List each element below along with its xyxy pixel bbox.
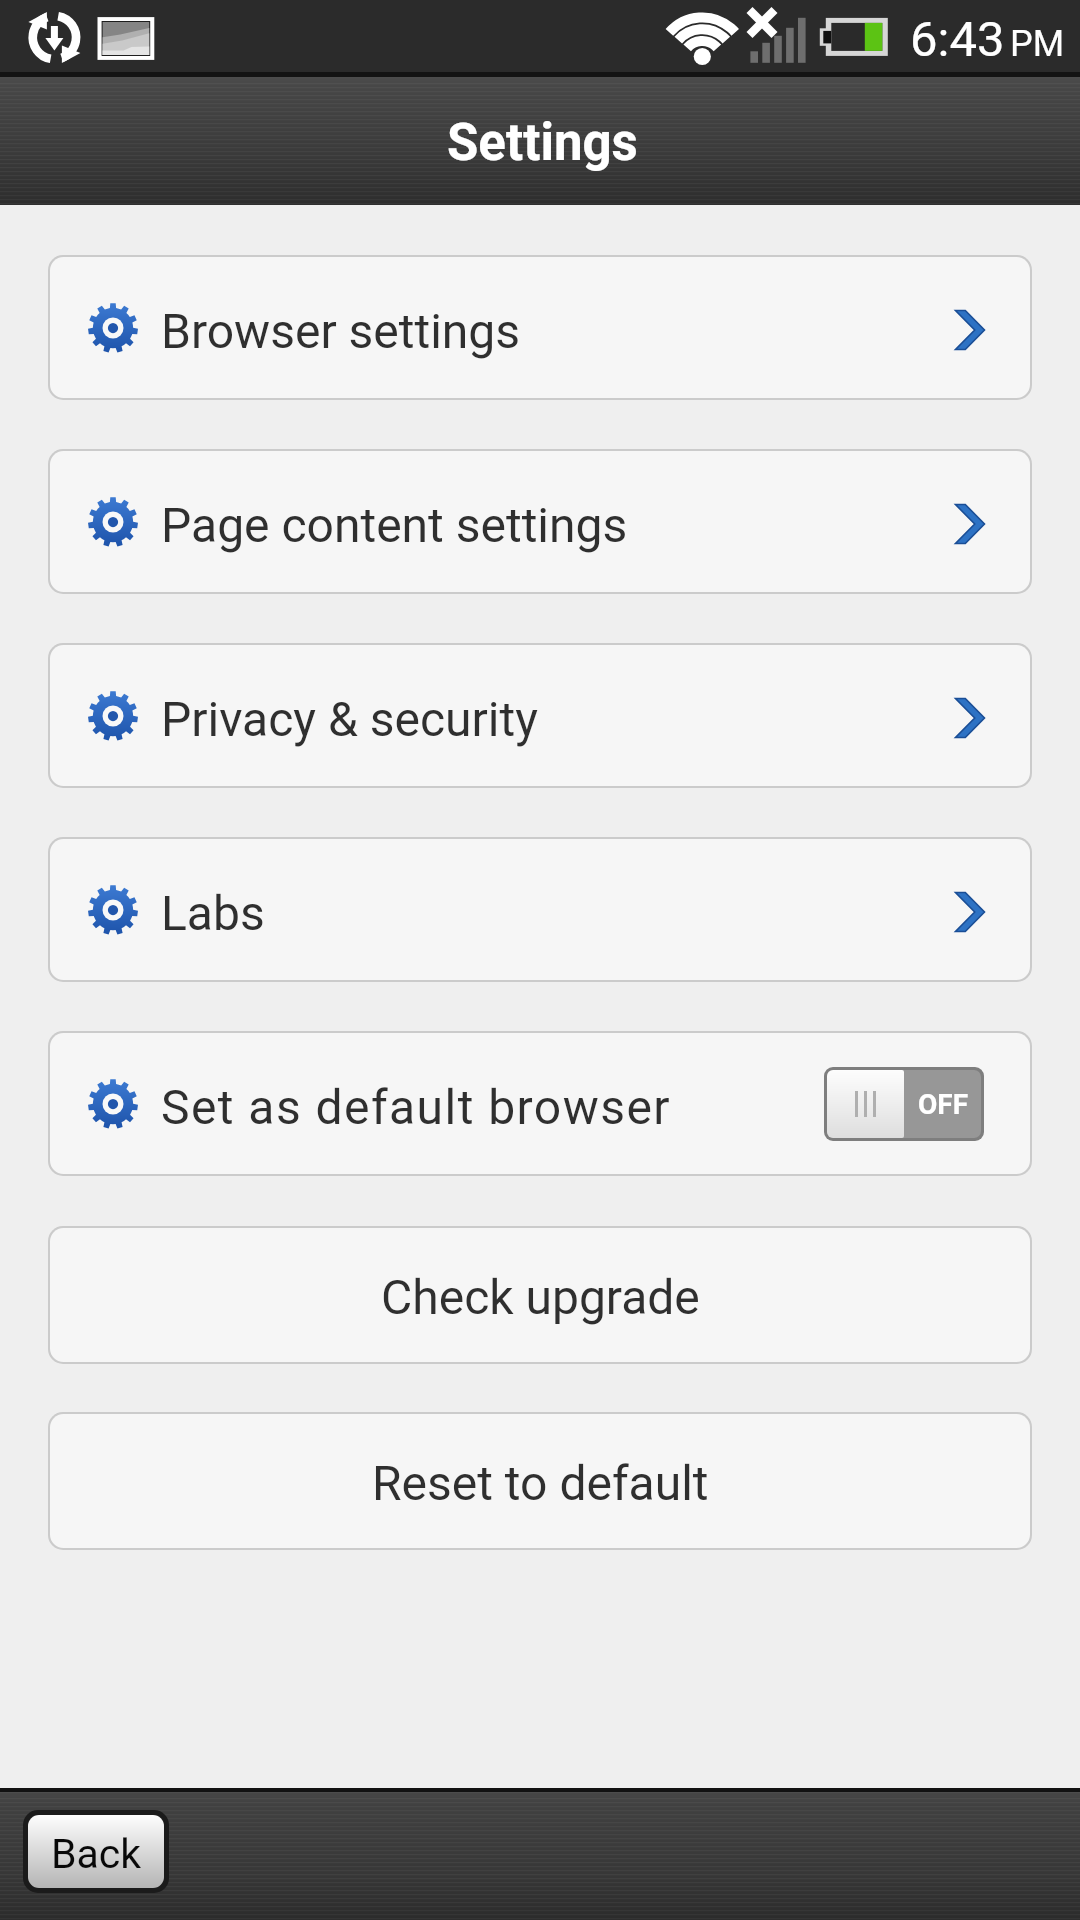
staticText: Browser settings [161, 303, 947, 359]
button[interactable]: Browser settings [50, 257, 1030, 398]
staticText: Back [51, 1830, 142, 1878]
staticText: Labs [161, 885, 947, 941]
button[interactable]: Set as default browser [50, 1033, 1030, 1174]
button[interactable]: Back [28, 1815, 164, 1888]
staticText: Page content settings [161, 497, 947, 553]
button[interactable]: Check upgrade [50, 1228, 1030, 1362]
staticText: Check upgrade [381, 1269, 700, 1325]
staticText: Settings [447, 113, 638, 173]
staticText: Privacy & security [161, 691, 947, 747]
staticText: Set as default browser [161, 1079, 824, 1135]
button[interactable]: Reset to default [50, 1414, 1030, 1548]
button[interactable]: Page content settings [50, 451, 1030, 592]
button[interactable]: Privacy & security [50, 645, 1030, 786]
button[interactable]: Labs [50, 839, 1030, 980]
staticText: OFF [918, 1088, 969, 1121]
staticText: PM [1010, 23, 1065, 65]
staticText: Reset to default [372, 1455, 709, 1511]
staticText: 6:43 [910, 11, 1005, 68]
button[interactable]: Set as default browser, off [827, 1070, 981, 1138]
